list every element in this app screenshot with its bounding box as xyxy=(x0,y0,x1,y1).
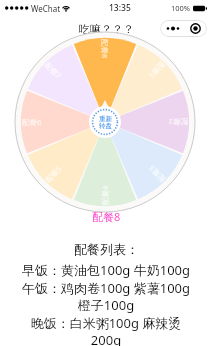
staticText: 重新 转盘 xyxy=(99,115,112,130)
staticText: 配餐3 xyxy=(146,163,167,184)
staticText: 13:35 xyxy=(109,2,131,14)
staticText: 晚饭：白米粥100g 麻辣烫200g xyxy=(20,314,192,346)
staticText: 吃嘛？？？ xyxy=(79,22,134,36)
staticText: 配餐8 xyxy=(100,39,110,59)
button[interactable]: 重新 转盘 xyxy=(89,106,121,138)
staticText: 配餐6 xyxy=(22,117,42,127)
staticText: 配餐2 xyxy=(168,117,188,127)
staticText: 早饭：黄油包100g 牛奶100g xyxy=(22,261,190,279)
staticText: 配餐7 xyxy=(43,60,64,81)
staticText: 配餐1 xyxy=(146,60,167,81)
button[interactable]: Close xyxy=(184,20,206,37)
staticText: 100% xyxy=(171,3,191,13)
staticText: 配餐5 xyxy=(43,163,64,184)
staticText: 配餐8 xyxy=(92,209,121,224)
staticText: 配餐4 xyxy=(100,185,110,205)
staticText: WeChat xyxy=(31,3,61,14)
button[interactable]: More xyxy=(161,20,184,37)
staticText: 配餐列表： xyxy=(74,241,139,257)
staticText: 午饭：鸡肉卷100g 紫薯100g 橙子100g xyxy=(20,279,192,314)
